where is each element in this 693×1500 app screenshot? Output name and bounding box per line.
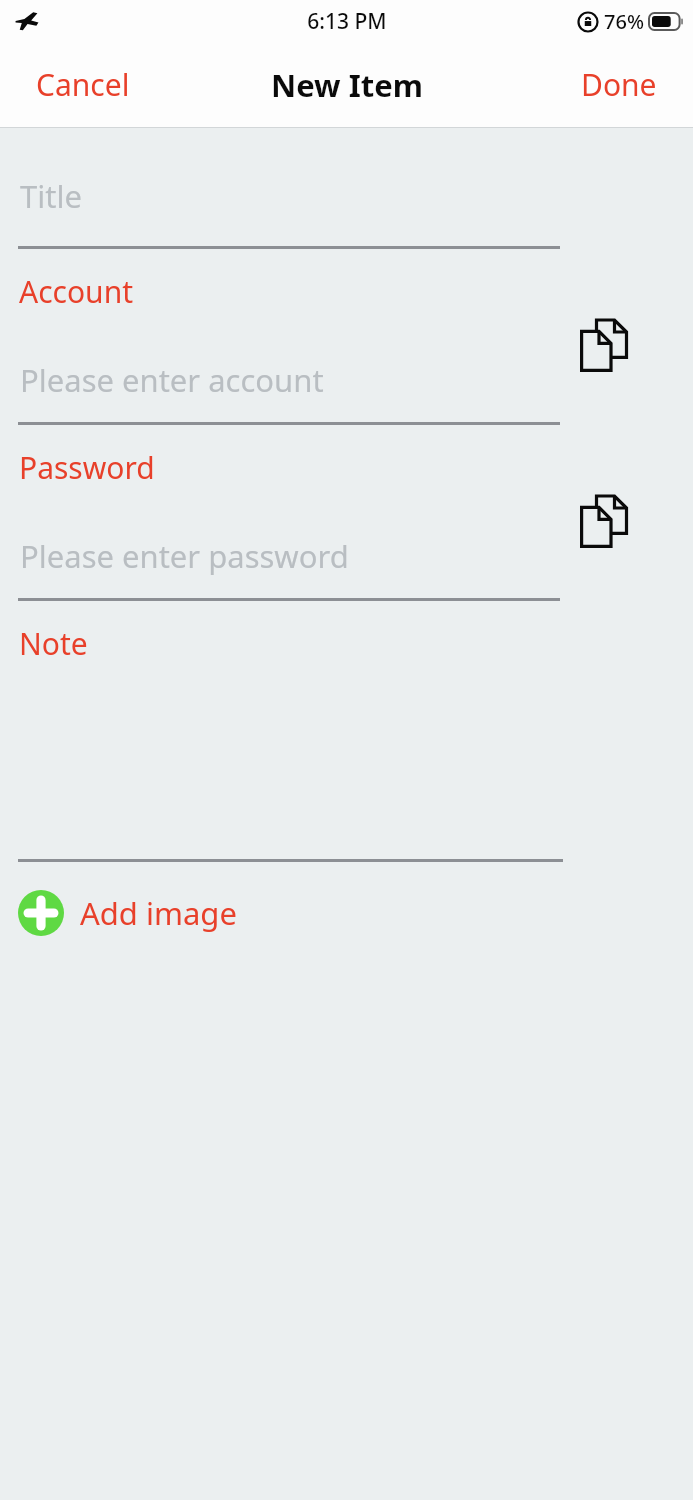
staticText: Account [19, 271, 134, 312]
button[interactable]: Done [545, 50, 693, 119]
button[interactable]: Add image [0, 884, 261, 942]
staticText: Title [20, 175, 82, 217]
staticText: Please enter account [20, 359, 324, 401]
button[interactable]: Copy password [579, 496, 631, 548]
staticText: Add image [80, 892, 237, 934]
staticText: Please enter password [20, 535, 349, 577]
button[interactable]: Copy account [579, 320, 631, 372]
staticText: Note [19, 623, 88, 664]
staticText: 76% [604, 8, 644, 35]
staticText: Done [581, 64, 657, 105]
button[interactable]: Please enter password [0, 488, 693, 598]
staticText: 6:13 PM [307, 7, 387, 36]
staticText: Cancel [36, 64, 130, 105]
button[interactable]: Cancel [0, 50, 166, 119]
button[interactable]: Please enter account [0, 312, 693, 422]
staticText: Password [19, 447, 155, 488]
button[interactable]: Title [0, 128, 693, 246]
staticText: New Item [271, 64, 423, 106]
